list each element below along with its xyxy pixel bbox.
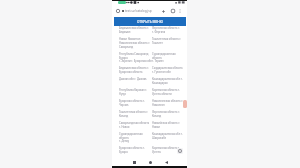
button[interactable]: Tabs <box>170 8 176 14</box>
staticText: г. Хорезм г. Бухарская обл <box>119 59 152 63</box>
staticText: Ташкентская область г. <box>152 37 182 41</box>
button[interactable]: text.uz/catalog.jsp <box>122 8 160 14</box>
staticText: Наманганская область г. <box>119 41 151 45</box>
staticText: text.uz/catalog.jsp <box>125 9 152 13</box>
staticText: Сырдарьинская область <box>152 66 183 70</box>
staticText: Коканд <box>152 114 162 118</box>
staticText: Ферганская область г. <box>152 26 180 30</box>
staticText: Навоийская область г. <box>152 121 181 125</box>
staticText: Бухарская область г. <box>119 146 145 150</box>
staticText: г. Термез <box>152 59 164 63</box>
staticText: Ферганская область г. <box>152 110 180 114</box>
staticText: Навои Наманган <box>119 37 141 41</box>
staticText: Нукус <box>119 92 127 96</box>
staticText: Наманган <box>152 103 165 107</box>
staticText: Наманганская область г. <box>152 99 184 103</box>
staticText: ОТКРЫТЬ МЕНЮ <box>137 20 163 24</box>
staticText: Хорезмская область г. <box>152 146 180 150</box>
button[interactable]: Recents <box>130 158 138 166</box>
staticText: Кашкадарьинская обл г. <box>152 77 183 81</box>
staticText: Ургенч области <box>152 92 172 96</box>
staticText: Коканд <box>119 114 129 118</box>
button[interactable]: Республика Каракал г. <box>119 88 185 99</box>
staticText: Ургенч <box>152 150 161 154</box>
button[interactable]: Андижанская область г. <box>119 66 185 77</box>
staticText: Кашкадарья <box>152 81 168 85</box>
button[interactable]: Home <box>146 158 154 166</box>
button[interactable]: Back <box>162 158 170 166</box>
staticText: Хорезмская область г. <box>152 88 180 92</box>
button[interactable]: ОТКРЫТЬ МЕНЮ <box>114 17 186 26</box>
staticText: Республика Каракал г. <box>119 88 148 92</box>
button[interactable]: Самаркандская область <box>119 121 185 132</box>
staticText: Бухарская область г. <box>119 99 145 103</box>
button[interactable]: Андижанская область г. <box>119 26 185 37</box>
button[interactable]: Scroll to top <box>177 148 183 154</box>
staticText: Ташкент <box>152 41 163 45</box>
staticText: Самаркандская область <box>119 121 150 125</box>
staticText: Джизак обл г. Джизак <box>119 77 147 81</box>
staticText: Кашкадарьинская обл г. <box>152 132 183 136</box>
staticText: Бухарская область <box>119 70 143 74</box>
button[interactable]: Home <box>115 8 121 14</box>
button[interactable]: Бухарская область г. <box>119 146 185 157</box>
staticText: г. Гулистан обл <box>152 70 171 74</box>
button[interactable]: More options <box>177 8 183 14</box>
staticText: г. Фергана <box>152 30 166 34</box>
button[interactable]: Навои Наманган <box>119 37 185 52</box>
staticText: Самарканд <box>119 45 134 49</box>
staticText: Бухара <box>119 150 128 154</box>
button[interactable]: Сурхандарьинская область <box>119 132 185 146</box>
staticText: Ташкентская область г. <box>119 110 149 114</box>
staticText: г. Навои <box>119 125 130 129</box>
button[interactable]: New tab <box>160 8 166 14</box>
staticText: Сурхандарьинская область <box>152 52 184 59</box>
staticText: г. Денау <box>119 139 130 143</box>
staticText: Чирчик <box>119 103 129 107</box>
button[interactable]: Бухарская область г. <box>119 99 185 110</box>
button[interactable]: Джизак обл г. Джизак <box>119 77 185 88</box>
staticText: Навои <box>152 125 160 129</box>
staticText: Андижанская область г. <box>119 66 149 70</box>
button[interactable]: Ташкентская область г. <box>119 110 185 121</box>
staticText: Шахрисабз <box>152 136 167 140</box>
button[interactable]: Республика Самарканд Бухара <box>119 52 185 66</box>
staticText: Андижан <box>119 30 131 34</box>
staticText: Республика Самарканд Бухара <box>119 52 152 59</box>
staticText: Андижанская область г. <box>119 26 149 30</box>
staticText: Сурхандарьинская область <box>119 132 152 139</box>
